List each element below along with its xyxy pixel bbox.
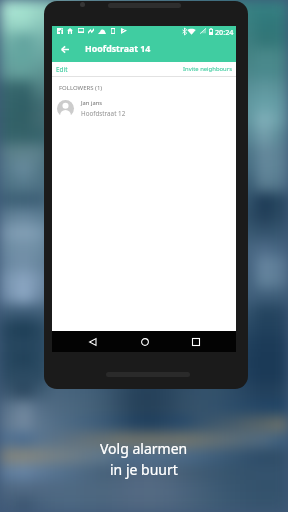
staticText: Jan jans	[81, 99, 103, 107]
staticText: FOLLOWERS (1)	[59, 84, 103, 92]
staticText: Volg alarmen	[100, 439, 188, 458]
staticText: Invite neighbours	[183, 65, 232, 73]
button[interactable]: Back	[52, 39, 78, 60]
button[interactable]: Recents	[190, 336, 201, 347]
button[interactable]: Edit	[52, 62, 72, 76]
staticText: in je buurt	[110, 460, 178, 479]
staticText: Edit	[56, 65, 68, 74]
staticText: Hoofdstraat 12	[81, 109, 126, 118]
button[interactable]: Jan jans	[52, 95, 236, 121]
staticText: Hoofdstraat 14	[85, 43, 151, 55]
button[interactable]: Back	[87, 336, 98, 347]
staticText: 20:24	[215, 27, 234, 37]
button[interactable]: Home	[139, 336, 150, 347]
button[interactable]: Invite neighbours	[179, 62, 236, 76]
